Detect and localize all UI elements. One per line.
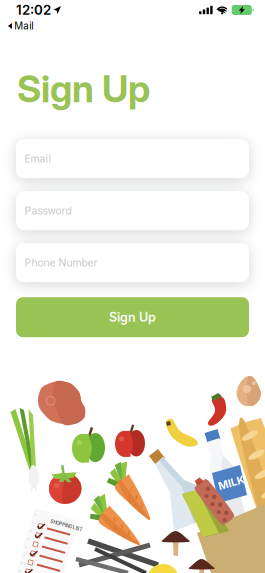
staticText: Email xyxy=(24,152,51,165)
staticText: SHOPPING LIST xyxy=(43,518,76,524)
staticText: 12:02 xyxy=(16,2,51,18)
staticText: MILK xyxy=(218,476,245,489)
staticText: Password xyxy=(24,204,71,217)
staticText: Mail xyxy=(14,20,33,32)
button[interactable]: Email xyxy=(16,139,249,178)
staticText: Phone Number xyxy=(24,256,97,269)
button[interactable]: Phone Number xyxy=(16,243,249,282)
button[interactable]: Sign Up xyxy=(16,297,249,337)
staticText: Sign Up xyxy=(109,310,156,325)
staticText: Sign Up xyxy=(17,66,150,111)
button[interactable]: Password xyxy=(16,191,249,230)
